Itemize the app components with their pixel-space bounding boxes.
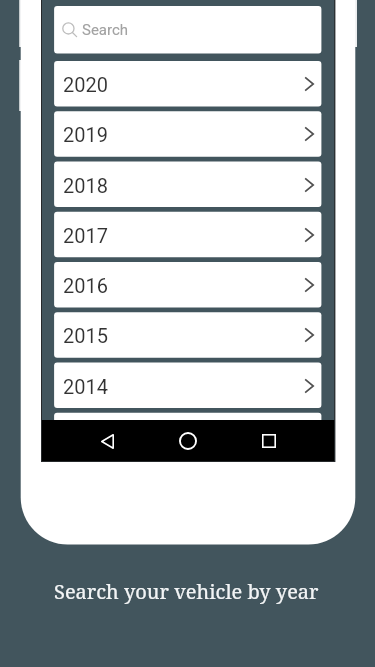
button[interactable]: Home (168, 420, 208, 461)
button[interactable]: 2014 (54, 363, 321, 409)
button[interactable]: Recent apps (249, 420, 289, 461)
staticText: 2015 (63, 324, 108, 347)
staticText: 2018 (63, 174, 108, 197)
button[interactable]: Search (54, 6, 321, 54)
button[interactable]: 2016 (54, 262, 321, 308)
button[interactable]: 2013 (54, 413, 321, 420)
button[interactable]: 2019 (54, 111, 321, 157)
button[interactable]: 2015 (54, 312, 321, 358)
button[interactable]: Back (87, 421, 127, 462)
staticText: 2017 (63, 224, 108, 247)
staticText: Search (82, 21, 129, 39)
staticText: 2019 (63, 123, 108, 146)
button[interactable]: 2018 (54, 162, 321, 208)
staticText: 2020 (63, 73, 108, 96)
button[interactable]: 2017 (54, 212, 321, 258)
staticText: 2016 (63, 274, 108, 297)
staticText: Search your vehicle by year (54, 578, 319, 605)
button[interactable]: 2020 (54, 61, 321, 107)
staticText: 2014 (63, 375, 108, 398)
